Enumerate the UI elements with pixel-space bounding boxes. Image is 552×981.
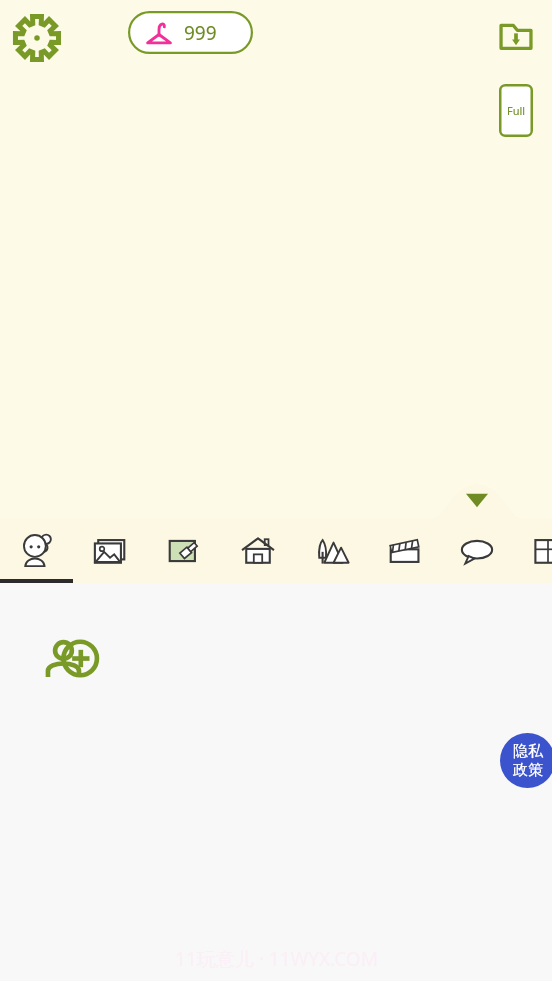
button[interactable]: Videos <box>369 518 441 583</box>
staticText: Full <box>507 103 526 118</box>
button[interactable]: Expand tabs <box>432 484 522 518</box>
button[interactable]: 999 <box>128 11 253 54</box>
staticText: 政策 <box>513 761 543 780</box>
button[interactable]: More <box>512 518 552 583</box>
button[interactable]: Full <box>499 84 533 137</box>
button[interactable]: Profile <box>1 518 73 583</box>
button[interactable]: Chat <box>441 518 513 583</box>
staticText: 隐私 <box>513 742 543 761</box>
button[interactable]: Home <box>222 518 294 583</box>
button[interactable]: Settings <box>12 13 62 63</box>
button[interactable]: Scenery <box>295 518 367 583</box>
staticText: 11玩意儿 · 11WYX.COM <box>175 946 378 972</box>
button[interactable]: Decorate <box>148 518 220 583</box>
button[interactable]: Add friend <box>43 630 105 692</box>
button[interactable]: Photos <box>74 518 146 583</box>
staticText: 999 <box>184 20 217 46</box>
button[interactable]: Download <box>494 14 538 58</box>
button[interactable]: 隐私 <box>500 733 552 788</box>
